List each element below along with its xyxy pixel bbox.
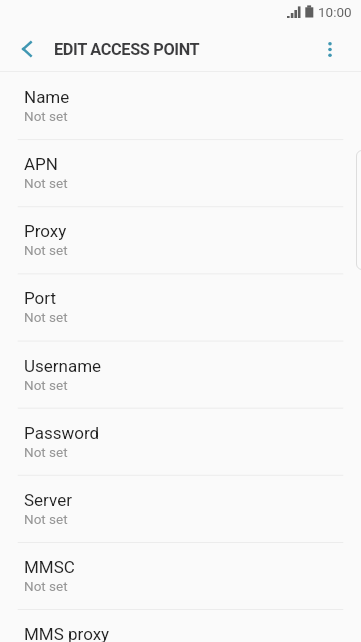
staticText: Not set [24,242,68,258]
staticText: Not set [24,175,68,191]
button[interactable]: Port [0,273,361,340]
staticText: Username [24,356,102,376]
staticText: Password [24,423,100,443]
button[interactable]: More options [298,26,361,72]
button[interactable]: Server [0,475,361,542]
staticText: EDIT ACCESS POINT [54,40,200,59]
staticText: MMS proxy [24,624,110,642]
staticText: Not set [24,511,68,527]
staticText: Not set [24,377,68,393]
staticText: Name [24,87,70,107]
button[interactable]: MMSC [0,542,361,609]
staticText: Not set [24,444,68,460]
button[interactable]: Navigate up [0,26,53,72]
button[interactable]: Password [0,408,361,475]
staticText: APN [24,154,58,174]
staticText: 10:00 [318,4,352,20]
button[interactable]: Name [0,72,361,139]
staticText: Not set [24,578,68,594]
button[interactable]: APN [0,139,361,206]
staticText: Not set [24,108,68,124]
button[interactable]: Proxy [0,206,361,273]
staticText: MMSC [24,557,75,577]
staticText: Proxy [24,221,67,241]
staticText: Server [24,490,72,510]
staticText: Not set [24,309,68,325]
button[interactable]: Username [0,341,361,408]
staticText: Port [24,288,57,308]
button[interactable]: MMS proxy [0,609,361,642]
